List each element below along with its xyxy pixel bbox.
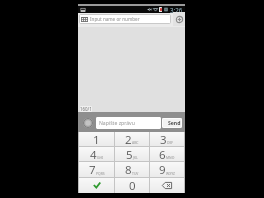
button[interactable]: Backspace (150, 178, 184, 193)
staticText: 2 (125, 132, 132, 146)
staticText: 8 (125, 162, 132, 177)
staticText: 3 (160, 132, 167, 146)
staticText: Input name or number (90, 16, 140, 22)
staticText: 3:26 (170, 6, 183, 13)
staticText: WXYZ (166, 171, 175, 176)
button[interactable]: Send (162, 118, 182, 128)
button[interactable]: 3 (150, 132, 184, 146)
staticText: Napište zprávu (99, 120, 135, 127)
staticText: TUV (132, 171, 139, 176)
staticText: 5 (126, 147, 133, 161)
button[interactable]: 9 (150, 162, 184, 177)
button[interactable]: Confirm (79, 178, 114, 193)
button[interactable]: Add recipient (173, 12, 185, 26)
button[interactable]: Insert smiley (83, 118, 93, 128)
staticText: 4 (90, 147, 97, 161)
staticText: 9 (159, 162, 166, 177)
staticText: MNO (166, 155, 175, 160)
button[interactable]: 0 (115, 178, 149, 193)
staticText: DEF (167, 140, 174, 145)
button[interactable]: 2 (115, 132, 149, 146)
staticText: Send (168, 120, 181, 127)
button[interactable]: 5 (115, 147, 149, 161)
button[interactable]: 7 (79, 162, 114, 177)
staticText: GHI (97, 155, 104, 160)
staticText: 1 (93, 132, 100, 146)
staticText: JKL (133, 155, 138, 160)
staticText: 160/1 (80, 106, 92, 112)
staticText: PQRS (96, 171, 105, 176)
staticText: ABC (132, 140, 139, 145)
button[interactable]: Input name or number (79, 14, 171, 24)
button[interactable]: 8 (115, 162, 149, 177)
button[interactable]: 1 (79, 132, 114, 146)
staticText: 0 (129, 178, 136, 193)
staticText: 6 (159, 147, 166, 161)
button[interactable]: Napište zprávu (96, 117, 161, 129)
staticText: 7 (89, 162, 96, 177)
button[interactable]: 4 (79, 147, 114, 161)
button[interactable]: 6 (150, 147, 184, 161)
